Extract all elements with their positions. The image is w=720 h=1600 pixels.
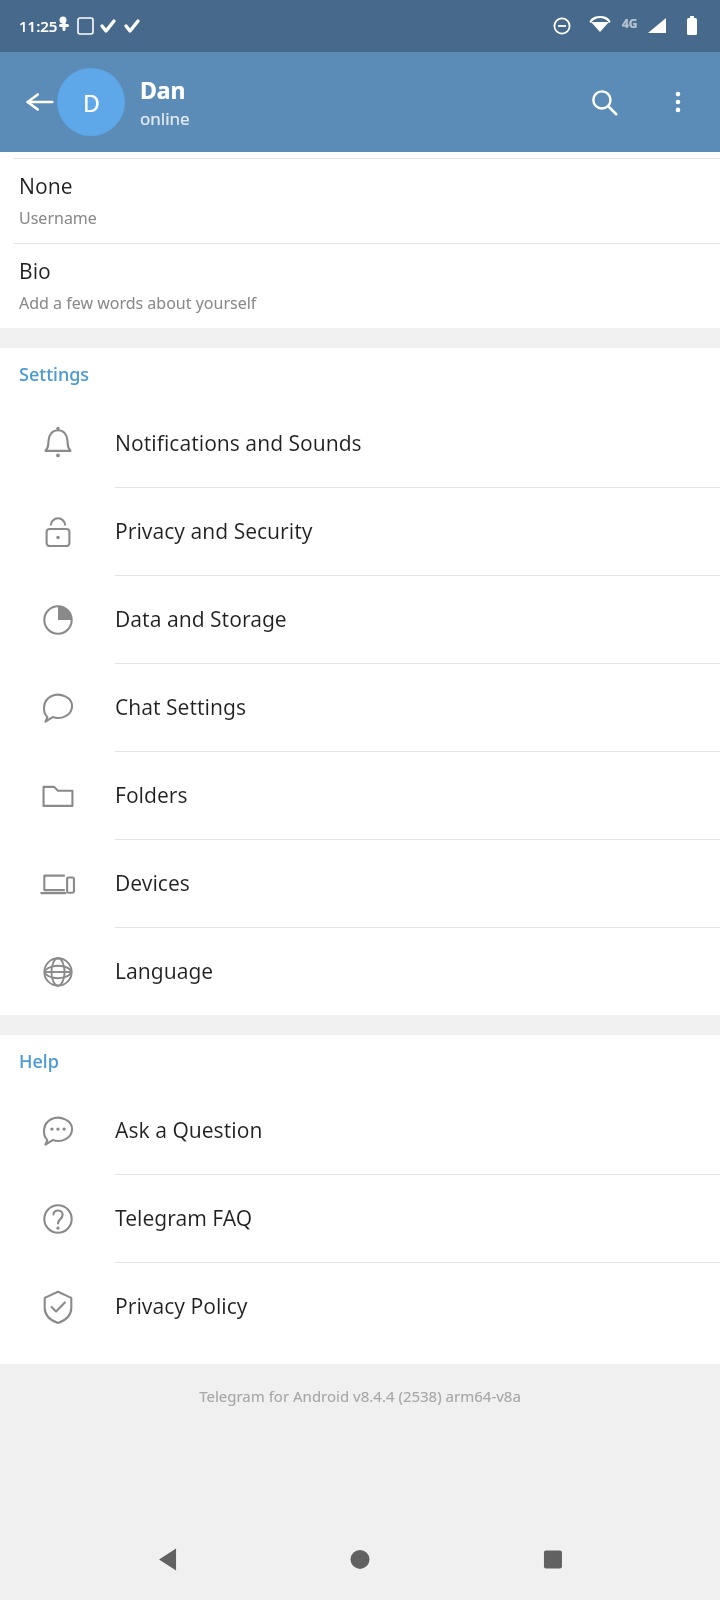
staticText: Chat Settings (115, 693, 246, 722)
button[interactable]: Data and Storage (0, 576, 720, 663)
button[interactable]: More options (650, 74, 706, 130)
button[interactable]: D (57, 68, 521, 136)
button[interactable]: Privacy Policy (0, 1263, 720, 1350)
staticText: Folders (115, 781, 188, 810)
staticText: Data and Storage (115, 605, 287, 634)
staticText: Privacy Policy (115, 1292, 248, 1321)
button[interactable]: Notifications and Sounds (0, 400, 720, 487)
button[interactable]: Back (8, 70, 72, 134)
staticText: Bio (19, 257, 51, 286)
staticText: Help (19, 1049, 59, 1074)
staticText: Ask a Question (115, 1116, 263, 1145)
staticText: Add a few words about yourself (19, 292, 257, 314)
staticText: Dan (140, 74, 186, 105)
staticText: D (83, 87, 100, 118)
button[interactable]: Telegram FAQ (0, 1175, 720, 1262)
staticText: online (140, 107, 190, 130)
button[interactable]: Language (0, 928, 720, 1015)
staticText: Settings (19, 362, 90, 387)
button[interactable]: Folders (0, 752, 720, 839)
button[interactable]: None (0, 159, 720, 243)
staticText: Telegram FAQ (115, 1204, 253, 1233)
staticText: 11:25 (19, 16, 58, 36)
staticText: Telegram for Android v8.4.4 (2538) arm64… (0, 1386, 720, 1406)
staticText: Language (115, 957, 214, 986)
staticText: Notifications and Sounds (115, 429, 362, 458)
button[interactable]: Search (576, 74, 632, 130)
button[interactable]: Ask a Question (0, 1087, 720, 1174)
staticText: None (19, 172, 73, 201)
staticText: 4G (622, 15, 638, 31)
button[interactable]: Chat Settings (0, 664, 720, 751)
button[interactable]: Privacy and Security (0, 488, 720, 575)
button[interactable]: Devices (0, 840, 720, 927)
staticText: Privacy and Security (115, 517, 313, 546)
staticText: Username (19, 207, 97, 229)
staticText: Devices (115, 869, 190, 898)
button[interactable]: Bio (0, 244, 720, 328)
